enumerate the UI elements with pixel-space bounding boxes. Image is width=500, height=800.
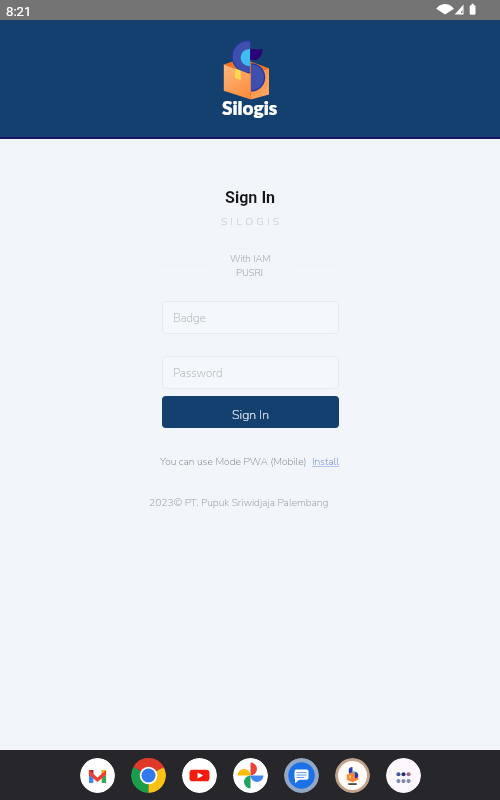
staticText: S I L O G I S (221, 214, 280, 228)
staticText: Install (312, 455, 340, 469)
staticText: 8:21 (6, 4, 32, 19)
button[interactable]: YouTube (182, 758, 217, 793)
staticText: 2023© PT. Pupuk Sriwidjaja Palembang (149, 496, 329, 510)
staticText: PUSRI (236, 266, 264, 279)
button[interactable]: Chrome (131, 758, 166, 793)
button[interactable]: Gmail (80, 758, 115, 793)
button[interactable]: Photos (233, 758, 268, 793)
button[interactable]: Password (162, 356, 339, 389)
staticText: Sign In (225, 188, 276, 207)
button[interactable]: Sign In (162, 396, 339, 428)
staticText: Badge (173, 310, 206, 326)
staticText: You can use Mode PWA (Mobile) (160, 455, 307, 469)
button[interactable]: All apps (386, 758, 421, 793)
button[interactable]: Install (312, 455, 340, 469)
staticText: Password (173, 365, 223, 381)
staticText: With IAM (230, 252, 271, 265)
staticText: Silogis (222, 96, 278, 119)
button[interactable]: Messages (284, 758, 319, 793)
button[interactable]: Badge (162, 301, 339, 334)
button[interactable]: Silogis (335, 758, 370, 793)
staticText: Sign In (232, 406, 270, 423)
